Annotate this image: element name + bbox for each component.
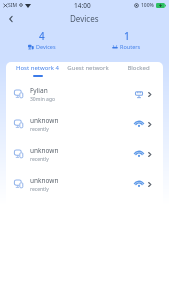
- staticText: recently: [30, 156, 49, 163]
- staticText: Devices: [70, 13, 99, 24]
- staticText: SIM: [8, 2, 18, 9]
- staticText: 100%: [141, 2, 154, 9]
- button[interactable]: Back: [3, 11, 19, 27]
- staticText: 4: [39, 29, 45, 43]
- staticText: Guest network: [67, 64, 109, 72]
- button[interactable]: unknown: [6, 169, 163, 199]
- button[interactable]: Fylian: [6, 79, 163, 109]
- staticText: Host network 4: [16, 64, 59, 72]
- staticText: Routers: [120, 43, 141, 50]
- staticText: 14:00: [74, 1, 91, 10]
- staticText: unknown: [30, 176, 59, 185]
- staticText: unknown: [30, 146, 59, 155]
- staticText: 30min ago: [30, 96, 55, 103]
- button[interactable]: Blocked: [113, 62, 163, 79]
- button[interactable]: unknown: [6, 139, 163, 169]
- button[interactable]: unknown: [6, 109, 163, 139]
- staticText: Blocked: [127, 64, 150, 72]
- button[interactable]: Guest network: [63, 62, 113, 79]
- button[interactable]: 4: [0, 27, 84, 52]
- staticText: Fylian: [30, 86, 48, 95]
- staticText: unknown: [30, 116, 59, 125]
- button[interactable]: 1: [84, 27, 169, 52]
- staticText: recently: [30, 126, 49, 133]
- staticText: 1: [124, 29, 130, 43]
- button[interactable]: Host network 4: [12, 62, 63, 79]
- staticText: recently: [30, 186, 49, 193]
- staticText: Devices: [36, 43, 56, 50]
